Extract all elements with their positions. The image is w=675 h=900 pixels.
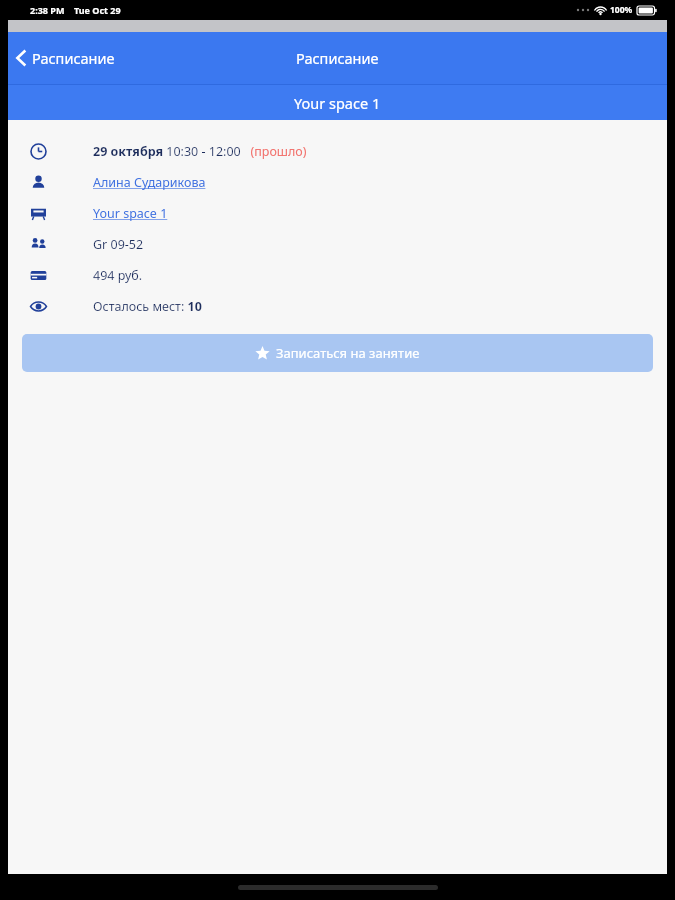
- button[interactable]: Your space 1: [93, 205, 168, 222]
- button[interactable]: Записаться на занятие: [22, 334, 653, 372]
- staticText: Осталось мест: 10: [93, 298, 202, 315]
- staticText: 29 октября 10:30 - 12:00 (прошло): [93, 143, 307, 160]
- staticText: Your space 1: [294, 93, 381, 113]
- staticText: Расписание: [296, 48, 379, 68]
- staticText: 494 руб.: [93, 267, 143, 284]
- button[interactable]: Расписание: [8, 42, 127, 74]
- staticText: Gr 09-52: [93, 236, 144, 253]
- staticText: 2:38 PM: [30, 4, 65, 16]
- staticText: Расписание: [32, 48, 115, 68]
- staticText: Tue Oct 29: [74, 4, 121, 16]
- button[interactable]: Алина Сударикова: [93, 174, 206, 191]
- staticText: 100%: [610, 4, 633, 16]
- staticText: Записаться на занятие: [276, 344, 420, 362]
